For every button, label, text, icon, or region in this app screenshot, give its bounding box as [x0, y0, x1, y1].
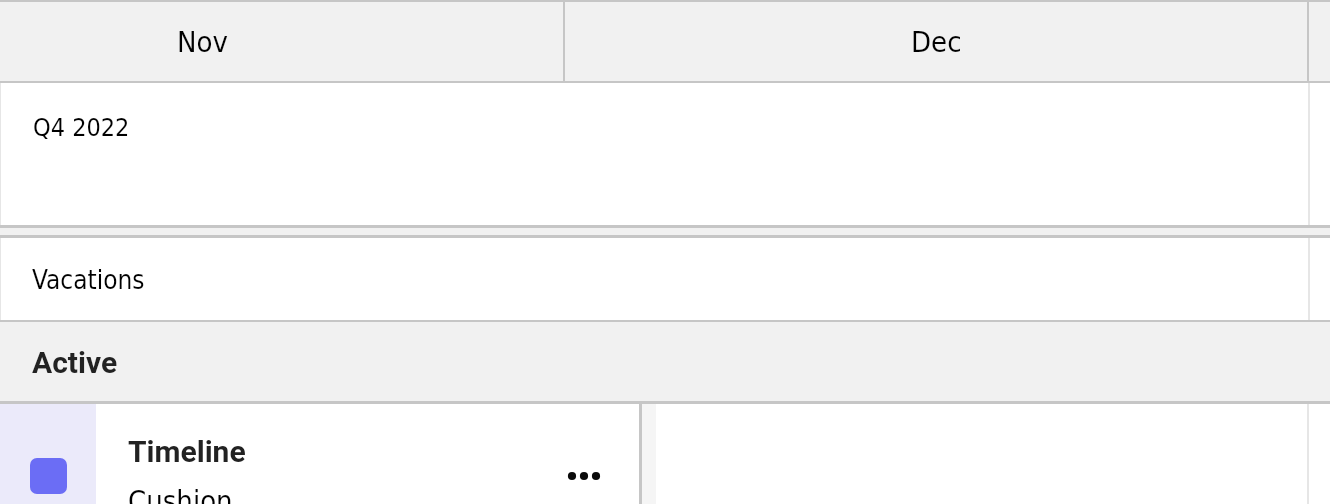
- button[interactable]: More options: [550, 448, 618, 504]
- button[interactable]: Q4 2022: [0, 83, 1330, 225]
- staticText: Cushion: [128, 484, 233, 504]
- button[interactable]: Vacations: [0, 238, 1330, 320]
- staticText: Q4 2022: [33, 113, 130, 142]
- staticText: Active: [32, 345, 118, 380]
- button[interactable]: Timeline: [96, 404, 550, 504]
- button[interactable]: Nov: [0, 2, 563, 81]
- button[interactable]: Active: [0, 322, 1330, 401]
- staticText: Nov: [177, 25, 228, 59]
- staticText: Vacations: [32, 265, 145, 295]
- staticText: Timeline: [128, 434, 246, 469]
- button[interactable]: Dec: [565, 2, 1307, 81]
- button[interactable]: Project colour: [0, 404, 96, 504]
- staticText: Dec: [911, 25, 962, 59]
